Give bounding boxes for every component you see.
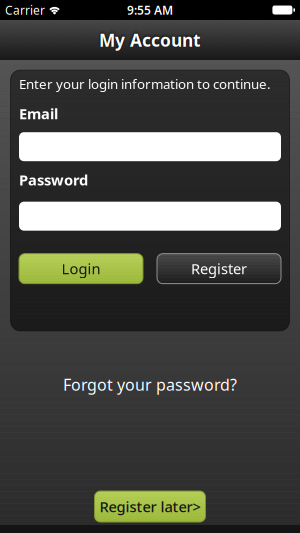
button[interactable]: Email <box>19 132 281 161</box>
staticText: Enter your login information to continue… <box>19 75 271 93</box>
staticText: Register later> <box>99 497 200 516</box>
staticText: 9:55 AM <box>127 2 173 18</box>
staticText: My Account <box>99 28 201 51</box>
staticText: Register <box>191 259 247 278</box>
button[interactable]: Forgot your password? <box>63 374 237 395</box>
button[interactable]: Password <box>19 202 281 231</box>
staticText: Forgot your password? <box>63 374 237 395</box>
staticText: Carrier <box>5 2 45 18</box>
button[interactable]: Register <box>157 254 281 284</box>
staticText: Email <box>19 104 58 123</box>
staticText: Password <box>19 170 88 190</box>
button[interactable]: Register later> <box>94 491 205 522</box>
button[interactable]: Login <box>19 254 143 284</box>
staticText: Login <box>61 259 100 278</box>
